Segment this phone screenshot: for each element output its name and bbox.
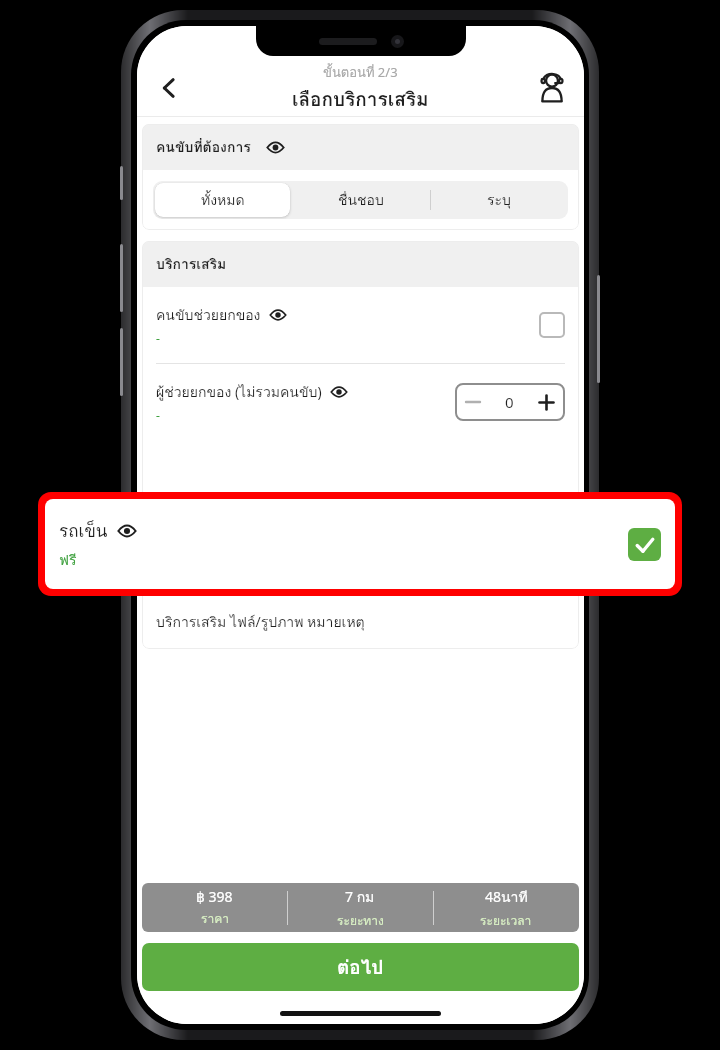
staticText: บริการเสริม ไฟล์/รูปภาพ หมายเหตุ — [156, 611, 365, 633]
button[interactable]: ผู้ช่วยยกของ (ไม่รวมคนขับ) — [142, 364, 579, 440]
staticText: 48นาที — [485, 886, 528, 908]
button[interactable]: รถเข็น — [45, 499, 675, 589]
button[interactable]: Select driver helper — [539, 312, 565, 338]
button[interactable]: ชื่นชอบ — [294, 183, 428, 217]
staticText: คนขับที่ต้องการ — [156, 136, 251, 158]
staticText: ราคา — [201, 909, 229, 928]
staticText: ฟรี — [59, 549, 77, 571]
staticText: - — [156, 407, 160, 423]
staticText: เลือกบริการเสริม — [292, 84, 429, 114]
other: Info — [331, 384, 347, 400]
staticText: ขั้นตอนที่ 2/3 — [323, 62, 398, 83]
button[interactable]: คนขับที่ต้องการ — [142, 124, 579, 170]
staticText: ระบุ — [487, 189, 511, 211]
staticText: ฿ 398 — [196, 887, 233, 906]
button[interactable]: Support — [530, 66, 574, 110]
staticText: บริการเสริม — [156, 253, 227, 275]
staticText: ต่อไป — [337, 952, 384, 982]
staticText: - — [156, 330, 160, 346]
button[interactable]: Back — [147, 66, 191, 110]
staticText: 0 — [505, 392, 514, 412]
staticText: คนขับช่วยยกของ — [156, 304, 261, 326]
button[interactable]: Decrease — [455, 383, 491, 421]
button[interactable]: ระบุ — [432, 183, 566, 217]
button[interactable]: ทั้งหมด — [155, 183, 290, 217]
button[interactable]: บริการเสริม — [142, 241, 579, 287]
other: Info — [267, 139, 284, 156]
button[interactable]: Increase — [528, 383, 565, 421]
staticText: รถเข็น — [59, 517, 108, 544]
button[interactable]: คนขับช่วยยกของ — [142, 287, 579, 363]
button[interactable]: ต่อไป — [142, 943, 579, 991]
staticText: ระยะเวลา — [480, 911, 532, 930]
other: Info — [270, 307, 286, 323]
other: Info — [118, 522, 136, 540]
staticText: 7 กม — [345, 886, 375, 908]
staticText: ผู้ช่วยยกของ (ไม่รวมคนขับ) — [156, 381, 322, 403]
button[interactable]: Cart selected — [628, 528, 661, 561]
button[interactable]: ตัวเลือกเพิ่มเติม — [142, 549, 579, 595]
staticText: ระยะทาง — [337, 911, 384, 930]
staticText: ทั้งหมด — [201, 189, 245, 211]
staticText: ชื่นชอบ — [338, 189, 384, 211]
